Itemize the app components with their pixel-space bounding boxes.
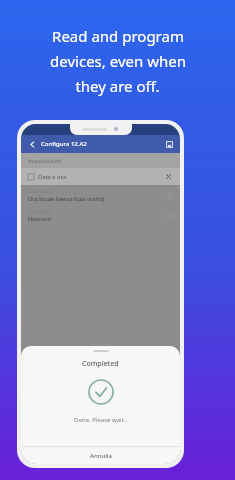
staticText: Annulla: [90, 452, 112, 460]
staticText: Configura 12.A2: [41, 140, 87, 148]
staticText: Read and program: [52, 26, 184, 46]
button[interactable]: Fuso orario: [21, 185, 180, 205]
staticText: Fuso orario: [28, 188, 53, 194]
staticText: Impostazioni: [28, 157, 62, 164]
staticText: Done. Please wait..: [74, 416, 128, 424]
button[interactable]: Save: [163, 138, 175, 150]
staticText: Nessuno: [28, 215, 52, 223]
button[interactable]: Data e ora: [21, 168, 180, 185]
staticText: they are off.: [75, 76, 160, 96]
staticText: devices, even when: [50, 51, 186, 71]
staticText: Ora locale (senza fuso orario): [28, 195, 105, 203]
button[interactable]: Close: [164, 172, 173, 181]
button[interactable]: Back: [26, 138, 38, 150]
staticText: Data e ora: [38, 173, 67, 181]
staticText: Completed: [82, 359, 119, 369]
button[interactable]: Ora legale: [21, 205, 180, 225]
staticText: Ora legale: [28, 208, 51, 214]
button[interactable]: Annulla: [21, 447, 180, 464]
